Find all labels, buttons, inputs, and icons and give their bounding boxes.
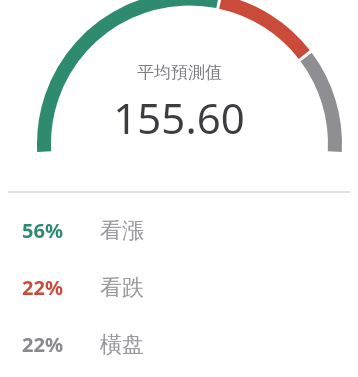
staticText: 22% bbox=[22, 331, 63, 358]
staticText: 橫盘 bbox=[100, 331, 144, 359]
button[interactable]: 22% bbox=[0, 271, 358, 304]
staticText: 56% bbox=[22, 217, 63, 244]
staticText: 看跌 bbox=[100, 274, 144, 302]
staticText: 平均預測值 bbox=[137, 62, 222, 83]
staticText: 155.60 bbox=[113, 89, 245, 146]
button[interactable]: 56% bbox=[0, 214, 358, 247]
staticText: 看漲 bbox=[100, 217, 144, 245]
staticText: 22% bbox=[22, 274, 63, 301]
button[interactable]: 22% bbox=[0, 328, 358, 361]
